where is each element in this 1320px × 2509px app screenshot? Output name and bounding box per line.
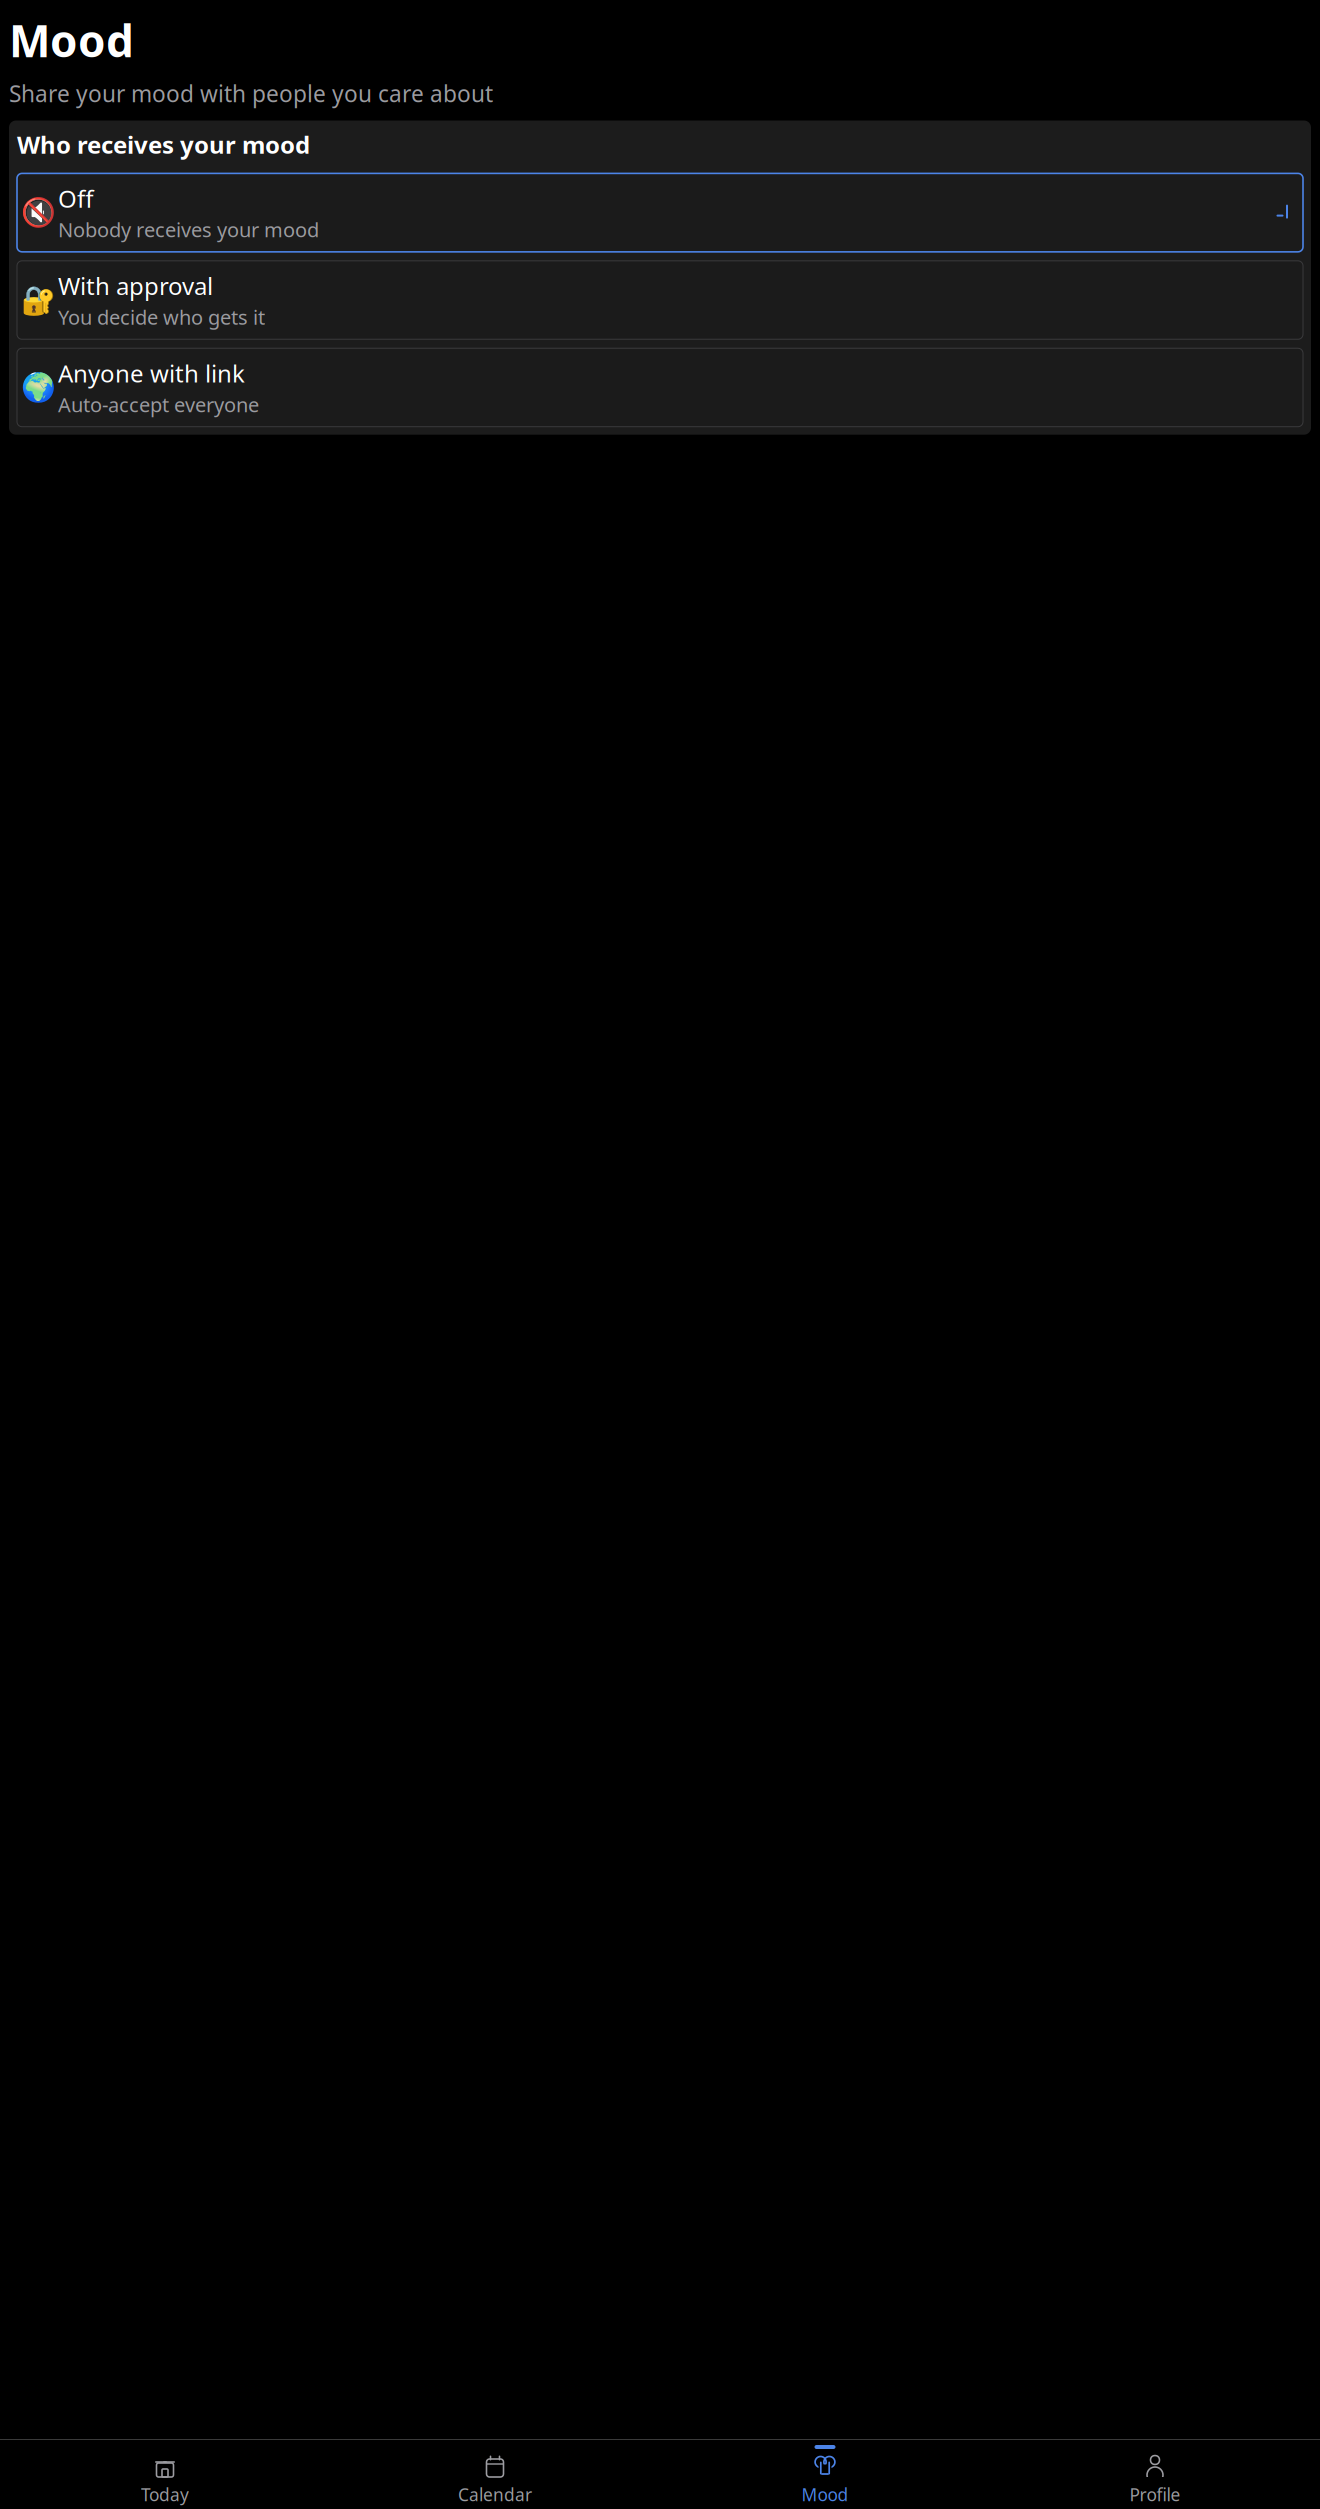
staticText: You decide who gets it bbox=[58, 304, 265, 330]
staticText: Auto-accept everyone bbox=[58, 391, 259, 418]
staticText: Calendar bbox=[458, 2483, 532, 2506]
staticText: Who receives your mood bbox=[17, 128, 310, 160]
staticText: Anyone with link bbox=[58, 357, 245, 389]
button[interactable]: 🌍 bbox=[17, 348, 1303, 427]
staticText: 🔐 bbox=[20, 284, 55, 316]
button[interactable]: Today bbox=[0, 2445, 330, 2506]
staticText: Profile bbox=[1129, 2483, 1180, 2506]
staticText: 🌍 bbox=[20, 371, 55, 403]
staticText: With approval bbox=[58, 270, 213, 302]
staticText: Nobody receives your mood bbox=[58, 216, 319, 243]
button[interactable]: Mood bbox=[660, 2445, 990, 2506]
button[interactable]: 🔐 bbox=[17, 261, 1303, 339]
button[interactable]: 🔇 bbox=[17, 173, 1303, 252]
button[interactable]: Profile bbox=[990, 2445, 1320, 2506]
staticText: Today bbox=[141, 2483, 189, 2506]
staticText: 🔇 bbox=[20, 197, 55, 229]
staticText: Off bbox=[58, 182, 94, 214]
staticText: Mood bbox=[801, 2483, 848, 2506]
button[interactable]: Calendar bbox=[330, 2445, 660, 2506]
staticText: Mood bbox=[9, 11, 134, 69]
staticText: Share your mood with people you care abo… bbox=[9, 78, 493, 108]
